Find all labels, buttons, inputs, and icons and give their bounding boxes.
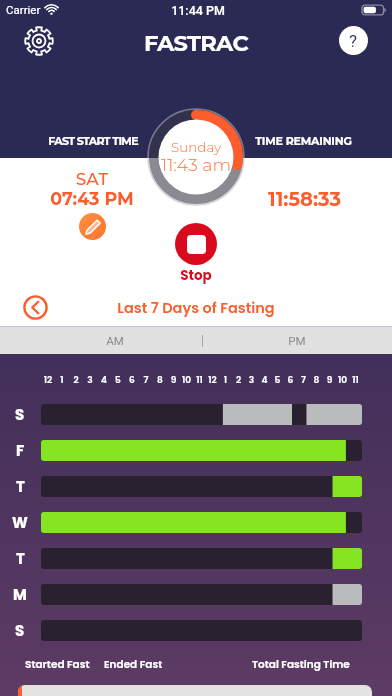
staticText: FASTRAC xyxy=(0,29,392,56)
staticText: Started Fast xyxy=(25,657,90,672)
staticText: T xyxy=(16,476,25,497)
staticText: TIME REMAINING xyxy=(211,134,392,147)
button[interactable]: Fasting day S xyxy=(41,404,362,425)
staticText: 5 xyxy=(111,374,125,387)
staticText: 7 xyxy=(139,374,153,387)
staticText: M xyxy=(13,584,27,605)
staticText: 3 xyxy=(83,374,97,387)
staticText: 11:58:33 xyxy=(212,187,392,211)
button[interactable]: Edit start time xyxy=(79,213,106,240)
staticText: S xyxy=(15,404,25,425)
staticText: ? xyxy=(349,31,358,51)
staticText: F xyxy=(16,440,25,461)
staticText: 11:44 PM xyxy=(2,3,392,18)
staticText: 3 xyxy=(245,374,258,387)
staticText: Total Fasting Time xyxy=(252,657,350,672)
staticText: S xyxy=(15,620,25,641)
staticText: 4 xyxy=(97,374,111,387)
staticText: SAT xyxy=(0,169,184,190)
button[interactable]: Fasting log entry xyxy=(18,685,372,696)
staticText: 9 xyxy=(167,374,180,387)
staticText: 11 xyxy=(193,374,206,387)
button[interactable]: Stop fast xyxy=(175,223,217,265)
staticText: AM xyxy=(55,334,175,347)
button[interactable]: Help xyxy=(331,18,376,63)
staticText: PM xyxy=(237,334,357,347)
staticText: 11 xyxy=(349,374,362,387)
staticText: 10 xyxy=(180,374,193,387)
staticText: FAST START TIME xyxy=(0,134,186,147)
staticText: 07:43 PM xyxy=(0,188,184,209)
button[interactable]: Settings xyxy=(16,18,61,63)
staticText: Carrier xyxy=(6,3,41,16)
staticText: 4 xyxy=(258,374,271,387)
staticText: 9 xyxy=(323,374,336,387)
staticText: W xyxy=(12,512,28,533)
staticText: 11:43 am xyxy=(161,154,232,175)
staticText: T xyxy=(16,548,25,569)
staticText: 2 xyxy=(232,374,245,387)
button[interactable]: Fasting day T xyxy=(41,476,362,497)
staticText: 12 xyxy=(41,374,55,387)
staticText: 7 xyxy=(297,374,310,387)
button[interactable]: Previous week xyxy=(23,295,48,320)
staticText: 1 xyxy=(219,374,232,387)
button[interactable]: Fasting day W xyxy=(41,512,362,533)
staticText: 12 xyxy=(206,374,219,387)
staticText: 10 xyxy=(336,374,349,387)
staticText: Stop xyxy=(0,266,392,285)
staticText: 6 xyxy=(125,374,139,387)
button[interactable]: Fasting day F xyxy=(41,440,362,461)
button[interactable]: Fasting day M xyxy=(41,584,362,605)
staticText: 8 xyxy=(153,374,167,387)
staticText: 6 xyxy=(284,374,297,387)
staticText: Sunday xyxy=(171,139,222,155)
staticText: 2 xyxy=(69,374,83,387)
staticText: 5 xyxy=(271,374,284,387)
staticText: Last 7 Days of Fasting xyxy=(0,298,392,318)
button[interactable]: Fasting day T xyxy=(41,548,362,569)
staticText: 8 xyxy=(310,374,323,387)
staticText: 1 xyxy=(55,374,69,387)
staticText: Ended Fast xyxy=(104,657,163,672)
